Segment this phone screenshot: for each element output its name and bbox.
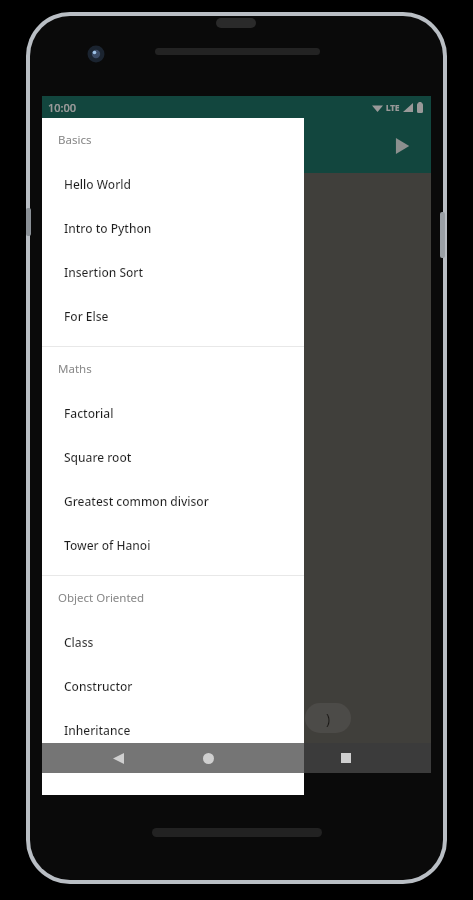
staticText: Tower of Hanoi: [64, 537, 151, 553]
staticText: # Philip J. Guo (pl: [52, 181, 201, 199]
staticText: Greatest common divisor: [64, 493, 209, 509]
staticText: Basics: [58, 132, 92, 148]
staticText: Constructor: [64, 678, 133, 694]
staticText: LTE: [386, 102, 400, 113]
button[interactable]: Square root: [42, 435, 304, 479]
button[interactable]: Class: [42, 620, 304, 664]
button[interactable]: Recents: [331, 743, 361, 773]
button[interactable]: Back: [103, 743, 133, 773]
button[interactable]: Greatest common divisor: [42, 479, 304, 523]
button[interactable]: Inheritance: [42, 708, 304, 752]
button[interactable]: Intro to Python: [42, 206, 304, 250]
staticText: ): [324, 709, 333, 728]
staticText: Insertion Sort: [64, 264, 143, 280]
staticText: if n == 0:: [52, 269, 162, 287]
staticText: return n * fact(n - 1): [52, 317, 255, 335]
staticText: Factorial: [64, 405, 114, 421]
staticText: Class: [64, 634, 94, 650]
staticText: Intro to Python: [64, 220, 152, 236]
button[interactable]: Hello World: [42, 162, 304, 206]
staticText: # factorial: [52, 213, 138, 231]
button[interactable]: Run: [385, 129, 419, 163]
button[interactable]: Home: [193, 743, 223, 773]
button[interactable]: Constructor: [42, 664, 304, 708]
staticText: For Else: [64, 308, 109, 324]
button[interactable]: ): [305, 703, 351, 733]
button[interactable]: Factorial: [42, 391, 304, 435]
button[interactable]: Tower of Hanoi: [42, 523, 304, 567]
staticText: Object Oriented: [58, 590, 145, 606]
staticText: Inheritance: [64, 722, 131, 738]
button[interactable]: For Else: [42, 294, 304, 338]
button[interactable]: Insertion Sort: [42, 250, 304, 294]
staticText: Hello World: [64, 176, 131, 192]
staticText: Square root: [64, 449, 132, 465]
staticText: 10:00: [48, 100, 77, 115]
staticText: Maths: [58, 361, 92, 377]
